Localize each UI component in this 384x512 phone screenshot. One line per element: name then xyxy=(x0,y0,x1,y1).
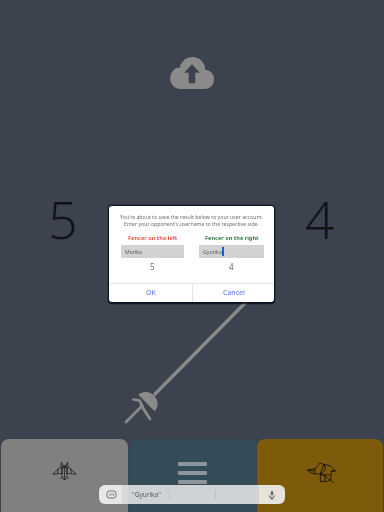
button[interactable]: Left fencer club xyxy=(1,439,128,512)
button[interactable]: Right fencer club xyxy=(257,439,383,512)
staticText: Gyurika xyxy=(203,248,222,255)
staticText: OK xyxy=(146,288,156,298)
button[interactable]: Cancel xyxy=(193,284,274,302)
button[interactable]: Voice input xyxy=(265,485,279,504)
staticText: You're about to save the result below to… xyxy=(114,213,269,227)
staticText: "Gyurika" xyxy=(132,490,161,499)
staticText: 5 xyxy=(48,183,78,254)
staticText: Cancel xyxy=(223,288,245,298)
staticText: 4 xyxy=(305,183,335,254)
button[interactable]: "Gyurika" xyxy=(122,485,259,504)
button[interactable]: Morika xyxy=(121,245,184,258)
button[interactable]: Upload result to cloud xyxy=(170,57,214,89)
button[interactable]: Menu xyxy=(129,439,256,512)
staticText: Fencer on the left xyxy=(128,234,178,242)
button[interactable]: Gyurika xyxy=(199,245,264,258)
staticText: 5 xyxy=(150,261,155,272)
staticText: 4 xyxy=(229,261,234,272)
staticText: Morika xyxy=(125,248,143,255)
button[interactable]: OK xyxy=(109,284,192,302)
staticText: EN xyxy=(109,492,115,498)
button[interactable]: Switch language xyxy=(102,485,120,504)
staticText: Fencer on the right xyxy=(205,234,259,242)
